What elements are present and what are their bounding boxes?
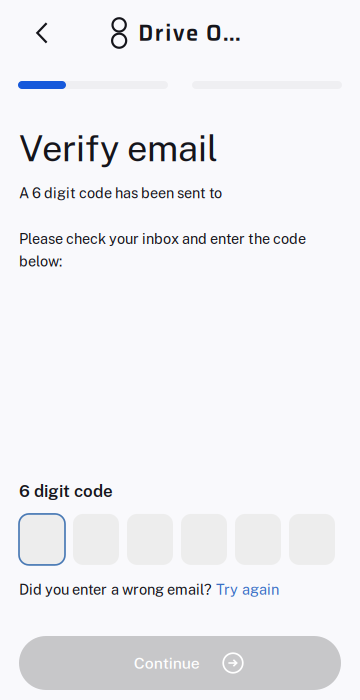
staticText: Please check your inbox and enter the co… [19, 230, 306, 270]
button[interactable]: Back [20, 11, 64, 55]
staticText: Try again [216, 581, 279, 598]
button[interactable]: Try again [216, 581, 279, 598]
button[interactable]: Continue [19, 636, 341, 690]
staticText: Drive One [138, 16, 250, 50]
staticText: Continue [134, 654, 200, 672]
staticText: Verify email [19, 127, 218, 169]
staticText: 6 digit code [19, 481, 113, 501]
staticText: A 6 digit code has been sent to [19, 184, 222, 201]
staticText: Did you enter a wrong email? [19, 581, 216, 598]
button[interactable]: Digit entry field [19, 514, 65, 565]
